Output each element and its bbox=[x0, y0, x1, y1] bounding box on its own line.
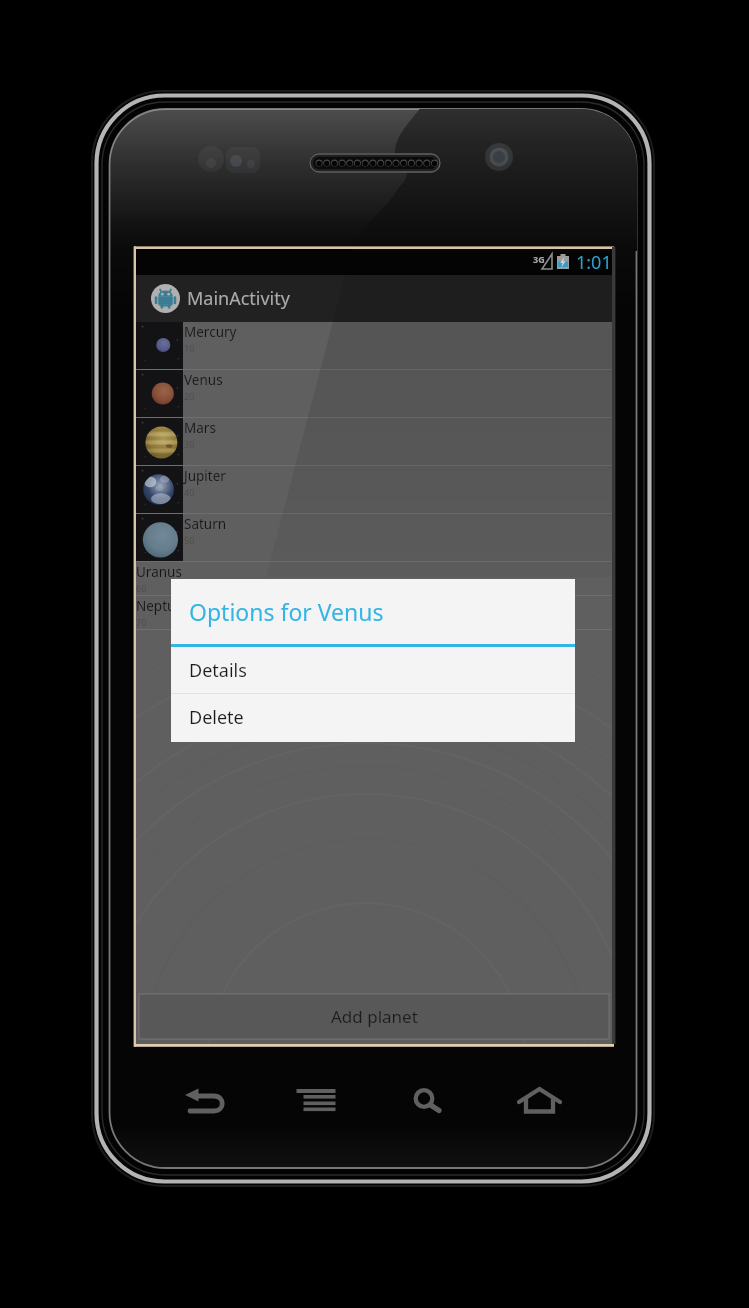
staticText: Delete bbox=[189, 705, 244, 730]
button[interactable]: Uranus bbox=[136, 562, 612, 596]
staticText: Saturn bbox=[184, 515, 227, 533]
staticText: Options for Venus bbox=[189, 596, 384, 627]
button[interactable]: Details bbox=[171, 647, 575, 693]
staticText: Add planet bbox=[331, 1005, 418, 1028]
button[interactable]: Jupiter bbox=[136, 466, 612, 514]
button[interactable]: Back bbox=[180, 1078, 230, 1126]
staticText: 3G bbox=[533, 253, 545, 265]
staticText: Mercury bbox=[184, 323, 237, 341]
staticText: 60 bbox=[136, 582, 147, 594]
staticText: 10 bbox=[184, 342, 195, 354]
staticText: Neptune bbox=[136, 597, 192, 615]
button[interactable]: Menu bbox=[292, 1078, 342, 1126]
button[interactable]: Mars bbox=[136, 418, 612, 466]
staticText: Mars bbox=[184, 419, 216, 437]
staticText: 30 bbox=[184, 438, 195, 450]
staticText: Details bbox=[189, 658, 247, 683]
staticText: 70 bbox=[136, 616, 147, 628]
button[interactable]: Mercury bbox=[136, 322, 612, 370]
button[interactable]: Saturn bbox=[136, 514, 612, 562]
staticText: MainActivity bbox=[187, 286, 290, 311]
staticText: Venus bbox=[184, 371, 223, 389]
staticText: 1:01 bbox=[576, 250, 612, 275]
button[interactable]: Delete bbox=[171, 694, 575, 741]
button[interactable]: Venus bbox=[136, 370, 612, 418]
staticText: 40 bbox=[184, 486, 195, 498]
button[interactable]: Search bbox=[403, 1078, 453, 1126]
button[interactable]: Home bbox=[515, 1078, 565, 1126]
button[interactable]: Add planet bbox=[139, 994, 609, 1039]
staticText: Uranus bbox=[136, 563, 182, 581]
button[interactable]: Neptune bbox=[136, 596, 612, 630]
staticText: Jupiter bbox=[184, 467, 226, 485]
staticText: 20 bbox=[184, 390, 195, 402]
staticText: 50 bbox=[184, 534, 195, 546]
